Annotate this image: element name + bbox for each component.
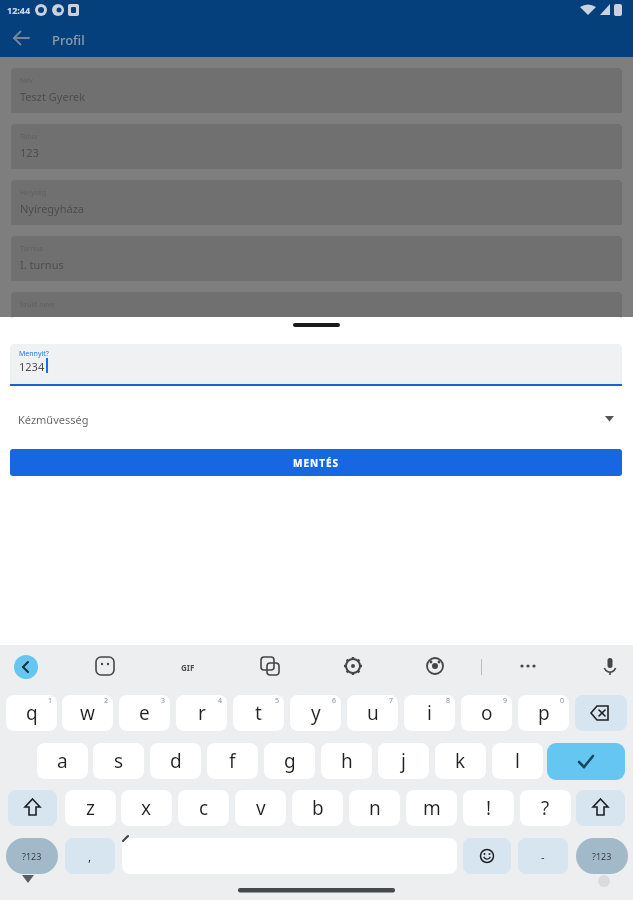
staticText: 2: [104, 696, 109, 706]
staticText: m: [423, 795, 441, 821]
button[interactable]: n: [349, 790, 400, 826]
button[interactable]: [575, 695, 627, 731]
button[interactable]: [547, 743, 625, 780]
button[interactable]: z: [65, 790, 116, 826]
staticText: l: [515, 748, 520, 774]
staticText: 0: [560, 696, 565, 706]
staticText: Mennyit?: [19, 349, 49, 359]
button[interactable]: ?123: [6, 838, 58, 874]
staticText: Teszt Gyerek: [20, 89, 86, 104]
button[interactable]: m: [406, 790, 457, 826]
button[interactable]: x: [121, 790, 172, 826]
button[interactable]: [93, 654, 117, 678]
button[interactable]: [14, 655, 38, 679]
staticText: !: [486, 795, 492, 821]
button[interactable]: l: [492, 743, 543, 779]
staticText: a: [57, 748, 68, 774]
button[interactable]: MENTÉS: [10, 449, 622, 476]
button[interactable]: Mennyit?: [10, 344, 622, 384]
button[interactable]: g: [264, 743, 315, 779]
button[interactable]: t: [233, 695, 284, 731]
button[interactable]: [258, 654, 282, 678]
button[interactable]: h: [321, 743, 372, 779]
button[interactable]: a: [37, 743, 88, 779]
button[interactable]: q: [6, 695, 57, 731]
staticText: x: [141, 795, 152, 821]
staticText: GIF: [181, 662, 195, 673]
staticText: v: [256, 795, 266, 821]
staticText: h: [341, 748, 353, 774]
button[interactable]: [8, 24, 38, 54]
staticText: 8: [446, 696, 451, 706]
staticText: 1: [48, 696, 53, 706]
staticText: q: [26, 700, 38, 726]
staticText: d: [170, 748, 182, 774]
staticText: f: [229, 748, 236, 774]
button[interactable]: !: [463, 790, 514, 826]
staticText: z: [86, 795, 95, 821]
staticText: -: [541, 849, 545, 864]
button[interactable]: u: [347, 695, 398, 731]
staticText: ?: [541, 795, 550, 821]
button[interactable]: p: [518, 695, 569, 731]
button[interactable]: o: [461, 695, 512, 731]
button[interactable]: v: [235, 790, 286, 826]
staticText: s: [114, 748, 124, 774]
staticText: Nyíregyháza: [20, 201, 85, 216]
button[interactable]: y: [290, 695, 341, 731]
staticText: Név: [20, 76, 33, 86]
button[interactable]: k: [435, 743, 486, 779]
staticText: i: [427, 700, 432, 726]
button[interactable]: ?: [520, 790, 571, 826]
button[interactable]: r: [176, 695, 227, 731]
staticText: Kézművesség: [18, 412, 89, 427]
button[interactable]: [122, 838, 457, 874]
button[interactable]: Kézművesség: [10, 406, 622, 432]
staticText: k: [455, 748, 466, 774]
button[interactable]: Szülő neve: [11, 292, 622, 337]
staticText: 5: [275, 696, 280, 706]
staticText: j: [401, 748, 406, 774]
button[interactable]: e: [119, 695, 170, 731]
button[interactable]: f: [207, 743, 258, 779]
button[interactable]: d: [150, 743, 201, 779]
staticText: MENTÉS: [293, 456, 340, 470]
button[interactable]: [463, 838, 511, 874]
staticText: Tábor: [20, 132, 39, 142]
staticText: n: [369, 795, 381, 821]
staticText: 7: [389, 696, 394, 706]
button[interactable]: w: [62, 695, 113, 731]
staticText: 12:44: [7, 4, 31, 16]
staticText: Turnus: [20, 244, 43, 254]
button[interactable]: [8, 790, 57, 826]
button[interactable]: s: [93, 743, 144, 779]
button[interactable]: j: [378, 743, 429, 779]
staticText: r: [198, 700, 206, 726]
staticText: e: [139, 700, 150, 726]
staticText: t: [255, 700, 262, 726]
staticText: o: [481, 700, 493, 726]
button[interactable]: [576, 790, 625, 826]
button[interactable]: [341, 654, 365, 678]
button[interactable]: ,: [65, 838, 115, 874]
button[interactable]: [598, 654, 622, 678]
staticText: u: [367, 700, 379, 726]
button[interactable]: b: [292, 790, 343, 826]
button[interactable]: c: [178, 790, 229, 826]
staticText: p: [538, 700, 550, 726]
button[interactable]: -: [518, 838, 568, 874]
button[interactable]: GIF: [176, 655, 200, 679]
staticText: c: [199, 795, 209, 821]
staticText: Profil: [52, 31, 85, 49]
button[interactable]: [423, 654, 447, 678]
staticText: w: [80, 700, 95, 726]
staticText: 4: [218, 696, 223, 706]
staticText: ?123: [592, 850, 612, 862]
button[interactable]: i: [404, 695, 455, 731]
button[interactable]: [516, 654, 540, 678]
button[interactable]: ?123: [576, 838, 628, 874]
